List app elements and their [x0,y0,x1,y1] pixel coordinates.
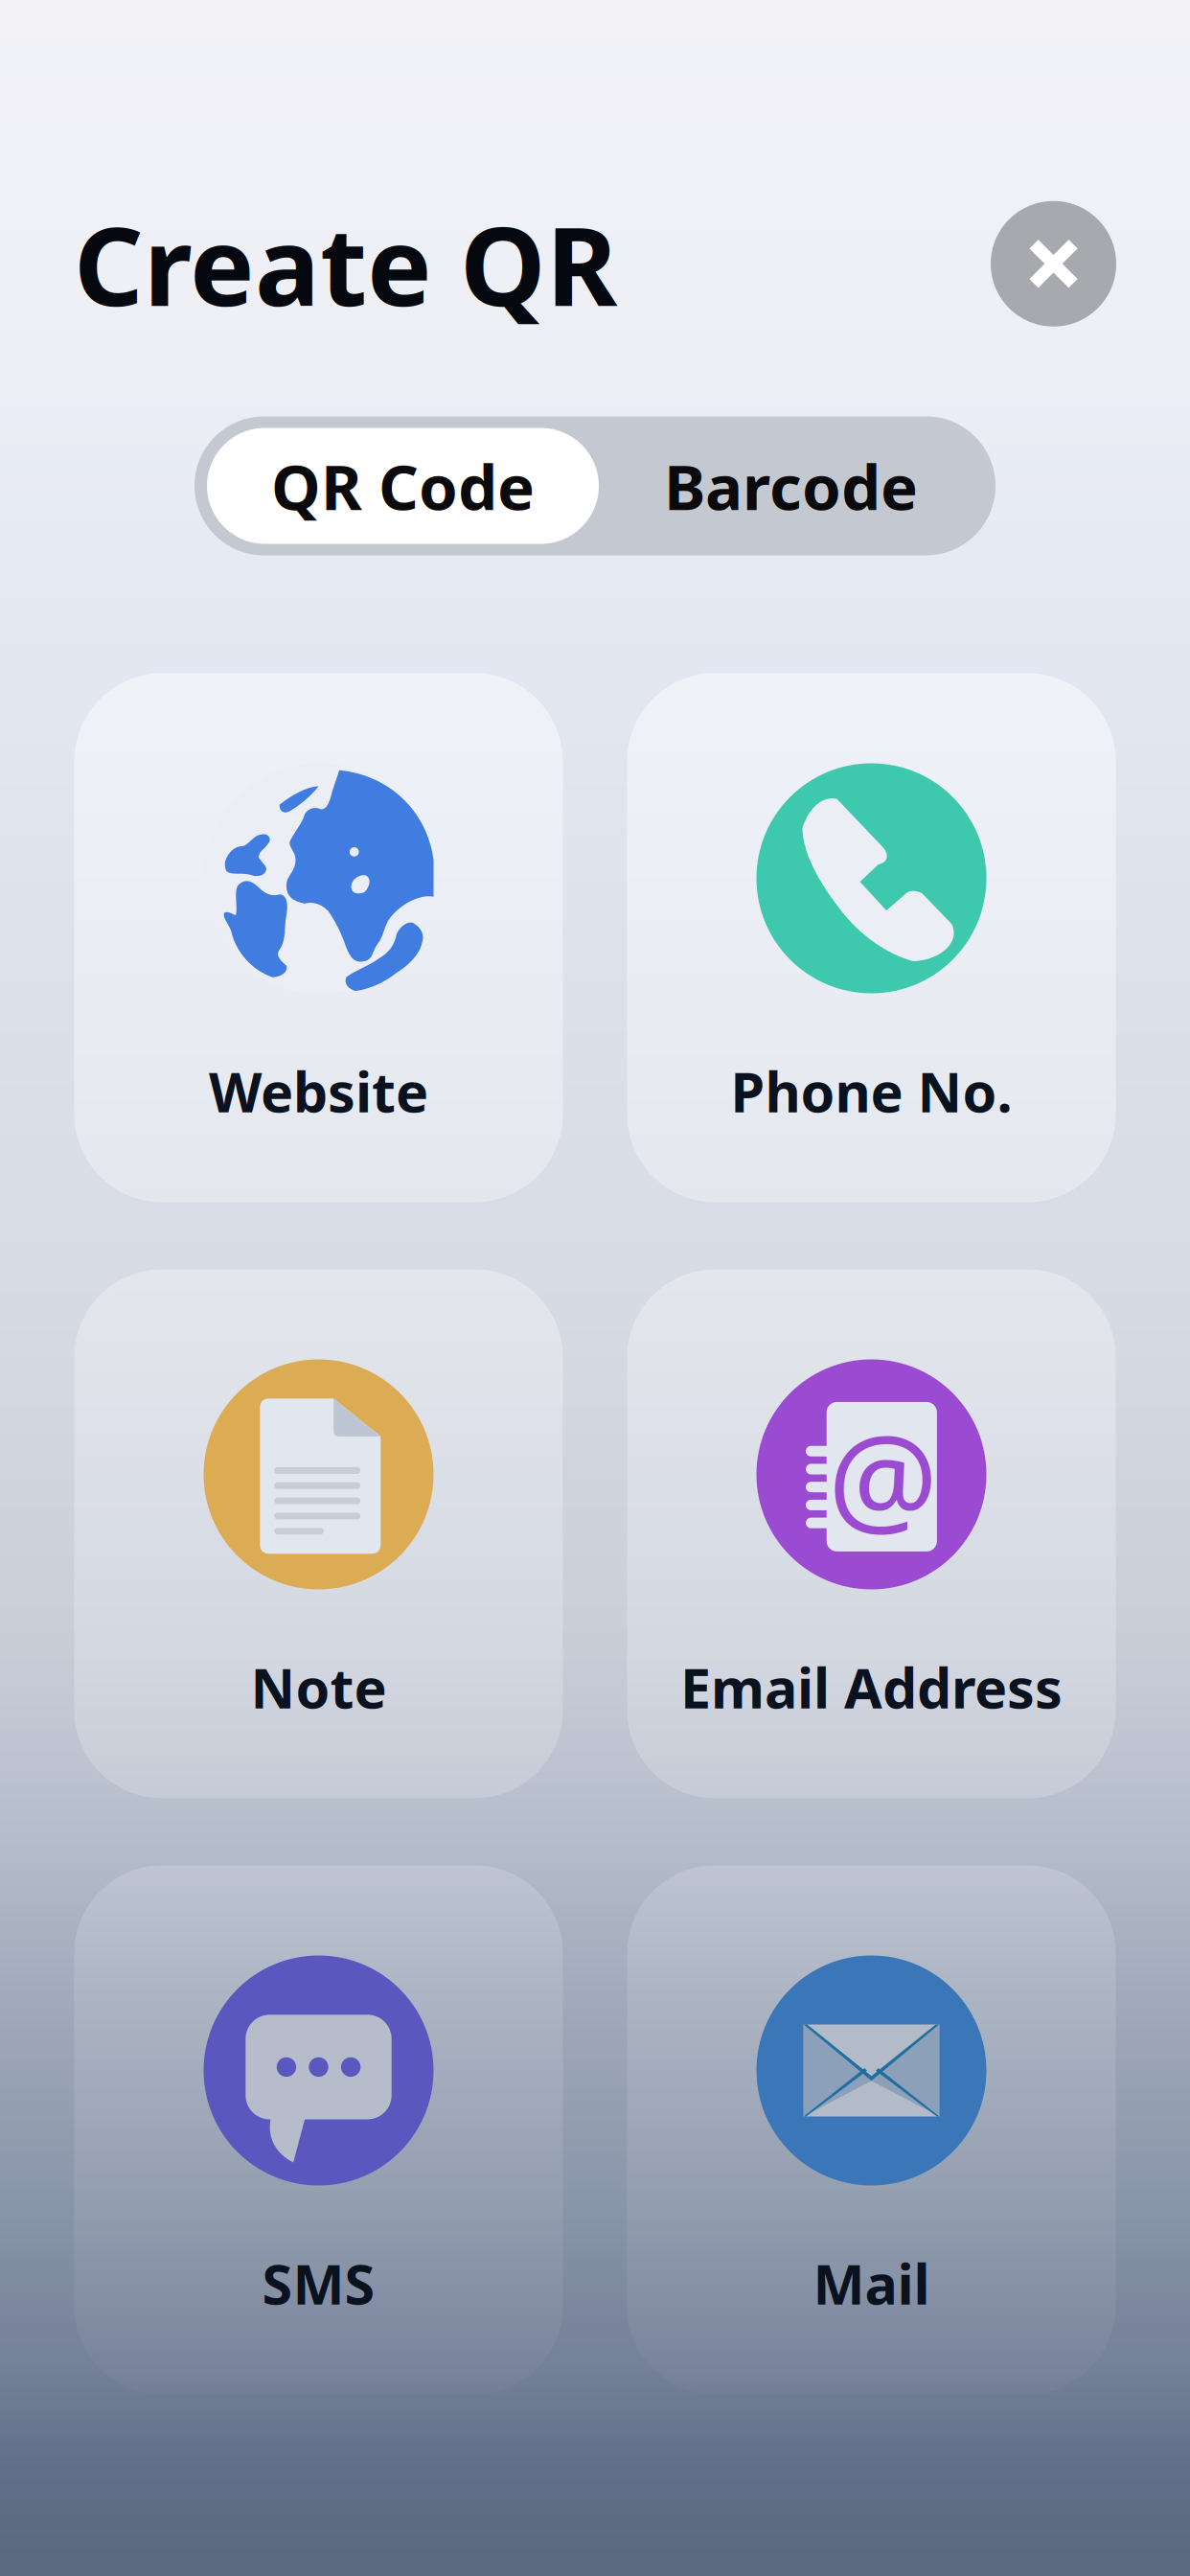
staticText: Create QR [74,192,617,336]
button[interactable]: Website [74,673,563,1202]
staticText: Email Address [680,1651,1063,1724]
button[interactable]: @ [627,1269,1116,1798]
button[interactable]: Mail [627,1865,1116,2394]
staticText: Phone No. [731,1055,1012,1127]
button[interactable]: Barcode [599,428,983,544]
button[interactable]: QR Code [207,428,599,544]
button[interactable]: Note [74,1269,563,1798]
staticText: Mail [813,2247,930,2320]
button[interactable]: Phone No. [627,673,1116,1202]
button[interactable]: SMS [74,1865,563,2394]
button[interactable]: Close [991,201,1116,327]
staticText: Note [251,1651,387,1724]
staticText: Barcode [664,444,918,527]
staticText: SMS [262,2247,375,2320]
staticText: Website [209,1055,428,1127]
staticText: QR Code [271,444,535,527]
staticText: @ [828,1395,938,1558]
